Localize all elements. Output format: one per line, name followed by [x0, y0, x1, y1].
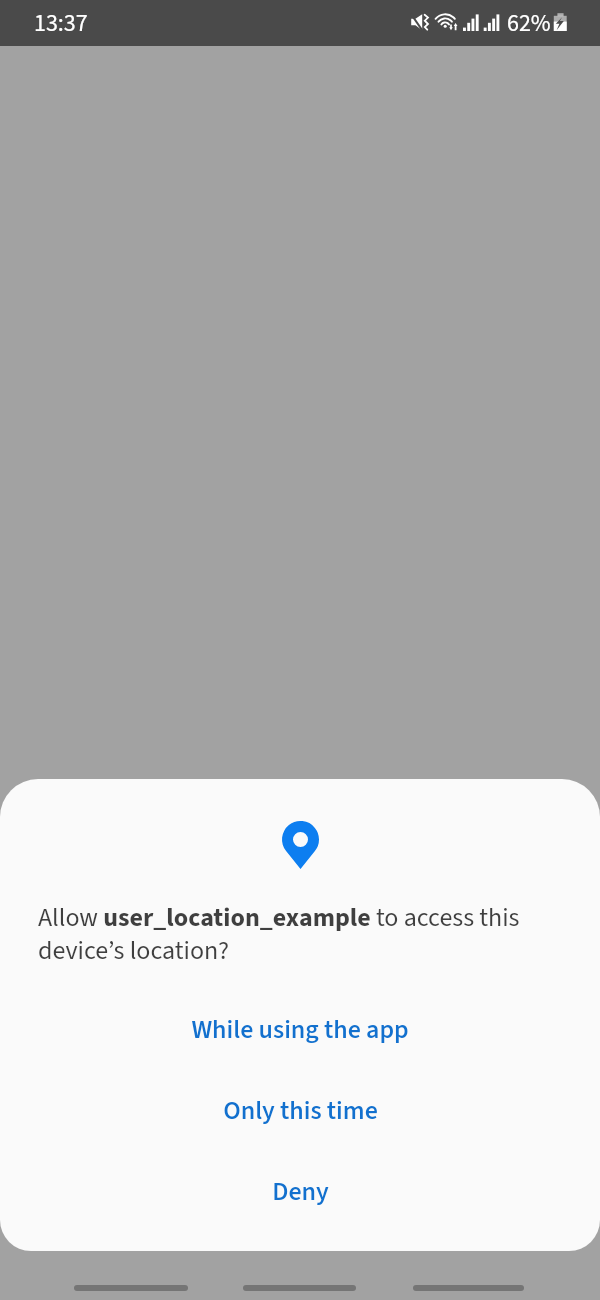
staticText: Deny — [272, 1173, 329, 1210]
staticText: Allow user_location_example to access th… — [38, 899, 562, 970]
button[interactable]: Home — [243, 1285, 356, 1291]
button[interactable]: While using the app — [0, 989, 600, 1070]
button[interactable]: Only this time — [0, 1070, 600, 1151]
button[interactable]: Deny — [0, 1151, 600, 1232]
staticText: 13:37 — [34, 6, 88, 40]
staticText: While using the app — [191, 1011, 409, 1048]
staticText: 62% — [507, 6, 551, 40]
button[interactable]: Back — [413, 1285, 524, 1291]
button[interactable]: Recents — [74, 1285, 188, 1291]
staticText: Only this time — [223, 1092, 378, 1129]
other: Location — [282, 821, 319, 869]
